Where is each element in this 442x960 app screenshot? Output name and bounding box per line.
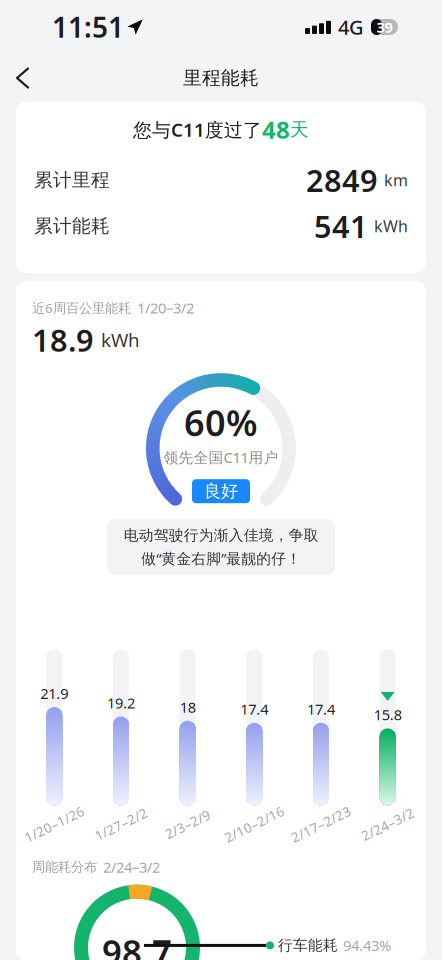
staticText: 17.4 [307,699,335,719]
staticText: 累计能耗 [34,214,110,237]
staticText: 39 [376,17,392,37]
button[interactable]: Back [0,56,46,99]
staticText: 行车能耗 [278,936,338,954]
staticText: 60% [184,398,258,446]
staticText: 94.43% [343,936,391,955]
staticText: 近6周百公里能耗 [32,299,131,317]
staticText: 4G [338,14,364,40]
staticText: 2/24–3/2 [359,815,416,833]
staticText: 2/3–2/9 [163,815,212,833]
staticText: 您与C11度过了 [133,117,262,142]
staticText: 1/20–1/26 [22,815,87,833]
button[interactable]: 良好 [192,479,250,503]
staticText: 48 [262,114,290,145]
staticText: 2/24–3/2 [103,857,160,877]
staticText: 1/20–3/2 [137,298,194,317]
staticText: 98.7 [102,929,172,960]
staticText: 良好 [204,481,238,502]
staticText: 18 [180,697,196,717]
staticText: kWh [374,215,408,237]
staticText: 11:51 [52,8,124,46]
staticText: 累计里程 [34,168,110,191]
staticText: 21.9 [40,684,68,703]
staticText: 2/10–2/16 [222,815,287,833]
staticText: 541 [314,206,368,246]
staticText: kWh [101,327,140,352]
staticText: 19.2 [107,693,135,712]
staticText: 18.9 [32,319,94,360]
staticText: 17.4 [240,699,268,719]
staticText: 15.8 [374,705,402,724]
staticText: 1/27–2/2 [92,815,149,833]
staticText: 领先全国C11用户 [163,447,278,467]
staticText: 周能耗分布 [32,859,97,875]
staticText: 天 [290,118,309,141]
staticText: km [384,169,408,191]
staticText: 2/17–2/23 [288,815,353,833]
staticText: 2849 [306,160,378,200]
staticText: 里程能耗 [183,66,259,89]
staticText: 电动驾驶行为渐入佳境，争取 做“黄金右脚”最靓的仔！ [123,526,318,568]
